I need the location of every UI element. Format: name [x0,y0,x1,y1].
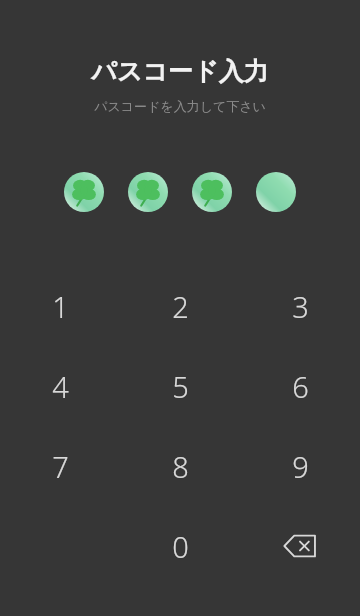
staticText: 9 [292,447,309,486]
button[interactable]: 6 [240,346,360,426]
staticText: 1 [52,287,69,326]
staticText: パスコードを入力して下さい [94,98,266,114]
button[interactable]: 1 [0,266,120,346]
staticText: 6 [292,367,309,406]
staticText: 8 [172,447,189,486]
button[interactable]: Backspace [240,506,360,586]
button[interactable]: 2 [120,266,240,346]
button[interactable]: 0 [120,506,240,586]
staticText: 0 [172,527,189,566]
staticText: 2 [172,287,189,326]
staticText: 3 [292,287,309,326]
button[interactable]: 9 [240,426,360,506]
staticText: 4 [52,367,69,406]
button[interactable]: 4 [0,346,120,426]
button[interactable]: 3 [240,266,360,346]
staticText: 7 [52,447,69,486]
button[interactable]: 7 [0,426,120,506]
button[interactable]: 5 [120,346,240,426]
staticText: パスコード入力 [91,56,269,87]
staticText: 5 [172,367,189,406]
button[interactable]: 8 [120,426,240,506]
